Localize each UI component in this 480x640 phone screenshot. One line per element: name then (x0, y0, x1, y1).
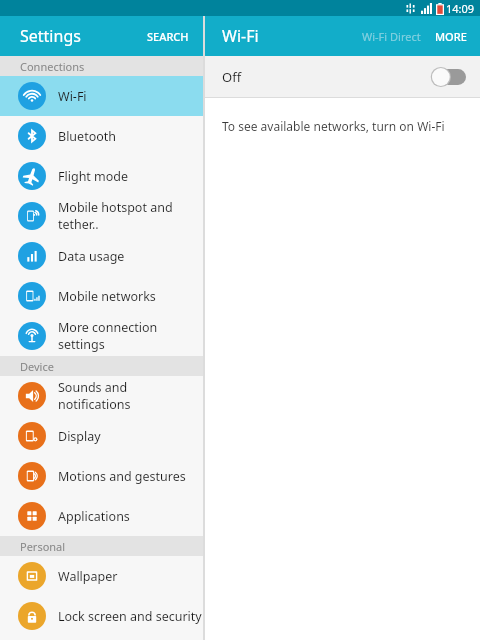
button[interactable]: Wallpaper (0, 556, 203, 596)
button[interactable]: Data usage (0, 236, 203, 276)
staticText: Device (20, 359, 54, 374)
button[interactable]: Wi-Fi (0, 76, 203, 116)
staticText: SEARCH (147, 29, 189, 44)
staticText: Connections (20, 59, 85, 74)
button[interactable]: Display (0, 416, 203, 456)
button[interactable]: Bluetooth (0, 116, 203, 156)
staticText: Settings (20, 25, 81, 47)
staticText: Sounds and notifications (58, 379, 203, 413)
button[interactable]: Applications (0, 496, 203, 536)
staticText: Wi-Fi (58, 88, 87, 105)
button[interactable]: Lock screen and security (0, 596, 203, 636)
button[interactable]: MORE (429, 19, 480, 54)
staticText: Mobile hotspot and tether.. (58, 199, 203, 233)
staticText: Flight mode (58, 168, 129, 185)
staticText: To see available networks, turn on Wi-Fi (222, 118, 445, 134)
staticText: Data usage (58, 248, 125, 265)
button[interactable]: Flight mode (0, 156, 203, 196)
button[interactable]: Wi-Fi Direct (354, 19, 429, 54)
staticText: Wi-Fi (222, 25, 259, 47)
staticText: Applications (58, 508, 130, 525)
staticText: 14:09 (446, 1, 475, 16)
button[interactable]: More connection settings (0, 316, 203, 356)
staticText: More connection settings (58, 319, 203, 353)
button[interactable]: SEARCH (133, 19, 203, 54)
button[interactable]: Sounds and notifications (0, 376, 203, 416)
staticText: MORE (435, 29, 467, 44)
staticText: Bluetooth (58, 128, 117, 145)
staticText: Display (58, 428, 101, 445)
staticText: Personal (20, 539, 66, 554)
staticText: Wi-Fi Direct (362, 29, 421, 44)
button[interactable]: Mobile hotspot and tether.. (0, 196, 203, 236)
button[interactable]: Motions and gestures (0, 456, 203, 496)
staticText: Off (222, 68, 242, 86)
button[interactable]: Off (205, 56, 480, 97)
button[interactable]: Toggle Wi-Fi (430, 66, 466, 88)
staticText: Motions and gestures (58, 468, 186, 485)
staticText: Mobile networks (58, 288, 156, 305)
button[interactable]: Mobile networks (0, 276, 203, 316)
staticText: Lock screen and security (58, 608, 202, 625)
staticText: Wallpaper (58, 568, 118, 585)
